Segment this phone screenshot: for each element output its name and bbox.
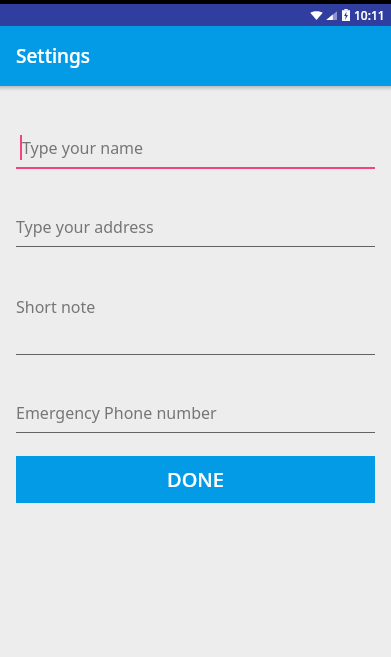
button[interactable]: Emergency Phone number xyxy=(16,397,375,433)
staticText: Short note xyxy=(16,296,96,318)
button[interactable]: Short note xyxy=(16,291,375,355)
staticText: Type your address xyxy=(16,216,154,238)
button[interactable]: Type your address xyxy=(16,211,375,247)
staticText: Settings xyxy=(16,43,90,69)
staticText: DONE xyxy=(167,466,224,493)
button[interactable]: Type your name xyxy=(16,132,375,169)
button[interactable]: DONE xyxy=(16,456,375,503)
staticText: Emergency Phone number xyxy=(16,402,217,424)
staticText: Type your name xyxy=(22,137,144,159)
staticText: 10:11 xyxy=(354,7,385,23)
